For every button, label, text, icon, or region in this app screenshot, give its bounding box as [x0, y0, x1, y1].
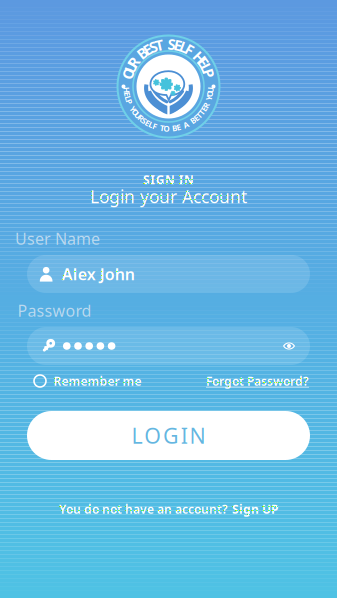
staticText: S: [149, 37, 157, 57]
staticText: O: [144, 421, 161, 450]
button[interactable]: Forgot Password?: [206, 370, 309, 392]
staticText: U: [125, 58, 136, 77]
staticText: O: [163, 123, 169, 134]
staticText: F: [185, 40, 193, 59]
staticText: E: [199, 52, 207, 72]
staticText: B: [137, 43, 147, 63]
staticText: User Name: [15, 228, 100, 249]
staticText: H: [124, 85, 130, 95]
staticText: I: [150, 171, 155, 187]
staticText: N: [165, 171, 175, 187]
staticText: E: [145, 117, 149, 128]
staticText: P: [204, 63, 213, 83]
button[interactable]: Show password: [275, 332, 303, 360]
staticText: Login your Account: [90, 185, 247, 208]
staticText: L: [131, 421, 142, 450]
staticText: S: [143, 171, 150, 187]
staticText: Forgot Password?: [206, 373, 309, 389]
staticText: R: [138, 113, 143, 123]
staticText: T: [155, 35, 163, 55]
staticText: E: [125, 89, 129, 99]
staticText: I: [181, 421, 188, 450]
staticText: E: [143, 40, 151, 59]
staticText: G: [156, 171, 165, 187]
button[interactable]: L: [27, 411, 310, 460]
staticText: You do not have an account?: [59, 501, 228, 517]
staticText: L: [149, 119, 153, 130]
button[interactable]: You do not have an account?: [59, 499, 278, 519]
staticText: P: [127, 96, 132, 107]
staticText: Y: [130, 104, 135, 114]
staticText: E: [194, 113, 198, 123]
staticText: [207, 96, 209, 107]
staticText: [130, 100, 132, 111]
staticText: [136, 47, 140, 67]
staticText: E: [174, 35, 182, 55]
staticText: Y: [206, 93, 211, 103]
staticText: Remember me: [53, 373, 141, 389]
staticText: I: [179, 171, 184, 187]
staticText: N: [190, 421, 206, 450]
staticText: R: [129, 52, 139, 72]
staticText: T: [197, 110, 202, 121]
button[interactable]: Remember me: [34, 370, 141, 392]
staticText: B: [190, 115, 195, 126]
staticText: E: [176, 122, 180, 133]
staticText: S: [142, 115, 146, 126]
staticText: L: [180, 37, 188, 57]
staticText: Alex John: [62, 263, 135, 285]
staticText: [193, 43, 197, 63]
staticText: Password: [17, 300, 91, 321]
staticText: A: [183, 119, 189, 130]
staticText: T: [160, 123, 165, 133]
staticText: B: [172, 123, 177, 133]
staticText: L: [126, 93, 130, 103]
staticText: [163, 34, 167, 54]
staticText: T: [199, 107, 204, 117]
staticText: E: [202, 104, 206, 114]
staticText: R: [203, 100, 208, 111]
staticText: Sign UP: [232, 501, 278, 517]
staticText: L: [202, 58, 210, 77]
staticText: H: [194, 47, 205, 67]
staticText: F: [153, 121, 157, 131]
staticText: [189, 117, 191, 128]
staticText: O: [207, 89, 213, 99]
staticText: O: [132, 107, 138, 117]
staticText: [181, 121, 183, 131]
staticText: O: [122, 63, 134, 83]
staticText: U: [207, 85, 213, 95]
staticText: N: [184, 171, 194, 187]
staticText: G: [163, 421, 179, 450]
staticText: S: [168, 34, 176, 54]
staticText: U: [135, 110, 141, 121]
